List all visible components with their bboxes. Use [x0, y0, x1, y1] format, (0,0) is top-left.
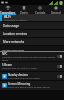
- staticText: Share media files on your device: [8, 77, 40, 80]
- staticText: Controls: [35, 11, 46, 14]
- staticText: Wi-Fi: [4, 15, 11, 19]
- other: Feature icon: [2, 74, 7, 79]
- staticText: Screen Mirroring: [8, 82, 31, 86]
- button[interactable]: Toggle: [57, 65, 62, 68]
- other: Feature icon: [2, 83, 7, 88]
- staticText: Mirror your device screen on other devic…: [8, 86, 50, 89]
- button[interactable]: Toggle: [57, 75, 62, 78]
- staticText: Data usage: [3, 24, 19, 28]
- staticText: More networks: [3, 40, 25, 44]
- button[interactable]: General: [48, 5, 64, 14]
- staticText: NFC: [2, 52, 8, 56]
- button[interactable]: Wi-Fi: [0, 15, 64, 21]
- staticText: Allow data exchange when the device touc…: [2, 56, 56, 61]
- button[interactable]: Device: [16, 5, 32, 14]
- button[interactable]: Feature icon: [0, 81, 64, 90]
- button[interactable]: Location services: [0, 30, 64, 37]
- staticText: Location services: [3, 32, 28, 36]
- button[interactable]: More networks: [0, 38, 64, 45]
- staticText: Connections: [0, 11, 16, 14]
- button[interactable]: NFC: [0, 52, 64, 61]
- staticText: General: [51, 11, 61, 14]
- button[interactable]: Connections: [0, 5, 16, 14]
- button[interactable]: Controls: [32, 5, 48, 14]
- button[interactable]: Toggle: [57, 55, 62, 58]
- button[interactable]: S Beam: [0, 62, 64, 71]
- staticText: Connected to network: [4, 19, 27, 21]
- staticText: S Beam: [2, 63, 12, 67]
- button[interactable]: Feature icon: [0, 72, 64, 80]
- staticText: Send files with NFC and Wi-Fi Direct: [2, 67, 37, 70]
- staticText: Device: [20, 11, 28, 14]
- button[interactable]: Data usage: [0, 22, 64, 29]
- staticText: Nearby devices: [8, 73, 28, 77]
- staticText: Connect and share: [2, 48, 25, 51]
